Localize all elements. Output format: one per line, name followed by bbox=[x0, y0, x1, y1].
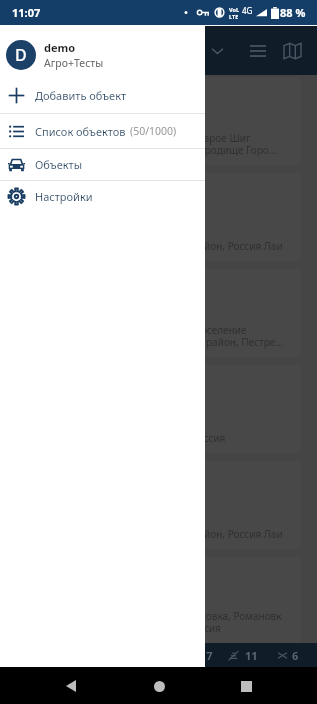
staticText: Республика Татарстан, Лаишевский район, … bbox=[16, 239, 283, 253]
staticText: VoL bbox=[229, 6, 239, 13]
button[interactable]: Home bbox=[143, 670, 175, 702]
button[interactable]: Recents bbox=[230, 670, 262, 702]
button[interactable]: Home bbox=[143, 670, 175, 702]
button[interactable]: Республика Татарстан, Кощаково — Старое … bbox=[8, 77, 301, 165]
button[interactable]: Offline objects bbox=[276, 648, 299, 663]
staticText: LTE bbox=[229, 13, 239, 20]
button[interactable]: D bbox=[0, 26, 205, 78]
staticText: 11:07 bbox=[12, 5, 41, 20]
button[interactable]: Back bbox=[55, 670, 87, 702]
staticText: Республика Татарстан, Лаишевский район, … bbox=[16, 527, 283, 541]
staticText: demo bbox=[44, 40, 76, 55]
staticText: Пестречинское сельское поселение, поселе… bbox=[16, 323, 284, 349]
staticText: Республика Татарстан, Кощаково — Старое … bbox=[16, 131, 277, 157]
staticText: Настройки bbox=[35, 189, 93, 204]
button[interactable]: Объекты bbox=[0, 149, 205, 180]
staticText: Объекты bbox=[35, 157, 83, 172]
button[interactable]: Satellites bbox=[183, 648, 213, 663]
staticText: D bbox=[15, 44, 27, 66]
staticText: 4G bbox=[242, 5, 253, 16]
button[interactable]: Настройки bbox=[0, 181, 205, 211]
button[interactable]: Map view bbox=[275, 34, 309, 68]
staticText: 17 bbox=[200, 648, 213, 663]
staticText: 88 % bbox=[280, 5, 306, 20]
button[interactable]: Добавить объект bbox=[0, 78, 205, 113]
button[interactable]: Список объектов bbox=[0, 114, 205, 148]
staticText: Список объектов bbox=[35, 124, 126, 139]
staticText: 11 bbox=[245, 648, 258, 663]
staticText: Республика Татарстан, Большая Романовка,… bbox=[16, 609, 282, 635]
button[interactable]: Recents bbox=[230, 670, 262, 702]
button[interactable]: Back bbox=[55, 670, 87, 702]
button[interactable]: GPS signal bbox=[227, 648, 258, 663]
button[interactable]: Expand bbox=[200, 34, 234, 68]
button[interactable]: Пестречинское сельское поселение, поселе… bbox=[8, 269, 301, 357]
button[interactable]: Республика Татарстан, Большая Романовка,… bbox=[8, 557, 301, 643]
staticText: Республика Татарстан, Пестречино, Россия bbox=[16, 431, 226, 445]
button[interactable]: Республика Татарстан, Лаишевский район, … bbox=[8, 173, 301, 261]
staticText: Агро+Тесты bbox=[44, 56, 104, 70]
staticText: 6 bbox=[292, 648, 299, 663]
staticText: Добавить объект bbox=[35, 88, 127, 103]
button[interactable]: List view bbox=[241, 34, 275, 68]
button[interactable]: Республика Татарстан, Пестречино, Россия bbox=[8, 365, 301, 453]
button[interactable]: Республика Татарстан, Лаишевский район, … bbox=[8, 461, 301, 549]
button[interactable]: Open navigation drawer bbox=[8, 34, 42, 68]
staticText: (50/1000) bbox=[130, 124, 177, 138]
